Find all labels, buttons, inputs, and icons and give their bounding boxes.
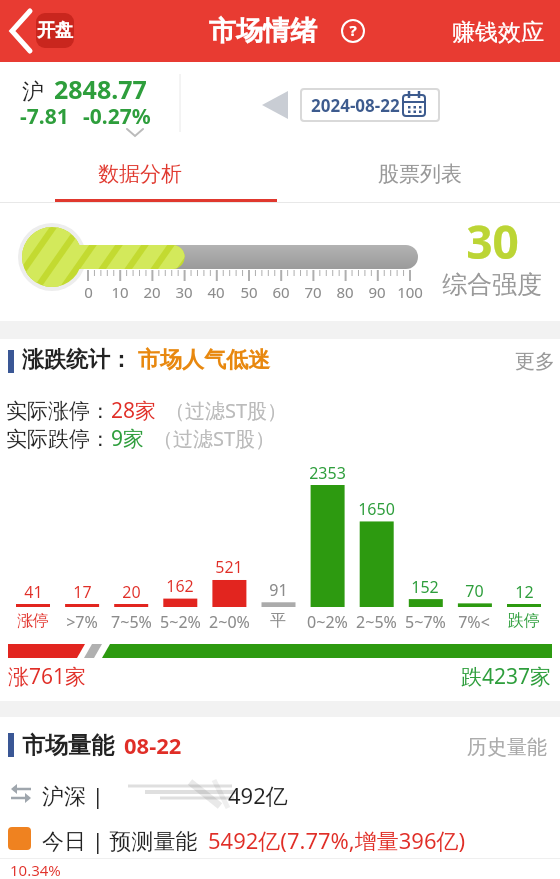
staticText: >7% bbox=[66, 611, 98, 633]
staticText: 市场情绪 bbox=[209, 14, 317, 48]
staticText: 70 bbox=[465, 580, 484, 602]
staticText: 跌4237家 bbox=[461, 662, 552, 691]
staticText: 2848.77 bbox=[54, 72, 147, 106]
staticText: 30 bbox=[466, 210, 519, 273]
staticText: 平 bbox=[270, 611, 286, 631]
button[interactable]: 数据分析 bbox=[0, 145, 280, 203]
staticText: 70 bbox=[304, 282, 322, 302]
staticText: 历史量能 bbox=[467, 735, 547, 760]
staticText: 涨跌统计： bbox=[22, 346, 132, 374]
button[interactable] bbox=[4, 6, 40, 56]
staticText: 40 bbox=[207, 282, 225, 302]
staticText: -0.27% bbox=[83, 102, 151, 131]
staticText: 28家 bbox=[111, 396, 157, 425]
staticText: 60 bbox=[272, 282, 290, 302]
staticText: 今日 | 预测量能 bbox=[42, 825, 198, 855]
staticText: 41 bbox=[24, 581, 43, 603]
staticText: 实际跌停： bbox=[6, 426, 111, 452]
staticText: 91 bbox=[269, 579, 288, 601]
staticText: 5492亿(7.77%,增量396亿) bbox=[208, 825, 466, 855]
button[interactable]: 2024-08-22 bbox=[300, 88, 440, 122]
staticText: 7~5% bbox=[111, 611, 152, 633]
staticText: 1650 bbox=[358, 498, 395, 520]
staticText: 沪深 | bbox=[42, 780, 104, 810]
staticText: 股票列表 bbox=[378, 161, 462, 187]
staticText: 2353 bbox=[309, 462, 346, 484]
staticText: 9家 bbox=[111, 424, 145, 453]
staticText: 开盘 bbox=[37, 19, 73, 42]
staticText: 10 bbox=[111, 282, 129, 302]
button[interactable]: 赚钱效应 bbox=[440, 14, 556, 50]
staticText: 涨停 bbox=[17, 611, 49, 631]
staticText: 0~2% bbox=[307, 611, 348, 633]
staticText: 沪 bbox=[22, 78, 44, 106]
staticText: 跌停 bbox=[508, 611, 540, 631]
button[interactable]: 更多 bbox=[495, 346, 555, 376]
staticText: 90 bbox=[368, 282, 386, 302]
staticText: 17 bbox=[73, 581, 92, 603]
staticText: 更多 bbox=[515, 349, 555, 374]
staticText: 20 bbox=[143, 282, 161, 302]
button[interactable]: 股票列表 bbox=[280, 145, 560, 203]
staticText: （过滤ST股） bbox=[153, 425, 276, 452]
staticText: 2024-08-22 bbox=[311, 94, 400, 117]
button[interactable] bbox=[255, 85, 295, 125]
staticText: 10.34% bbox=[10, 860, 61, 879]
staticText: 50 bbox=[240, 282, 258, 302]
staticText: 20 bbox=[122, 581, 141, 603]
staticText: 5~7% bbox=[405, 611, 446, 633]
staticText: 2~5% bbox=[356, 611, 397, 633]
staticText: 7%< bbox=[458, 611, 490, 633]
staticText: 12 bbox=[515, 581, 534, 603]
button[interactable]: 开盘 bbox=[36, 13, 74, 48]
staticText: （过滤ST股） bbox=[165, 397, 288, 424]
staticText: 521 bbox=[215, 556, 243, 578]
staticText: 30 bbox=[175, 282, 193, 302]
staticText: 数据分析 bbox=[98, 161, 182, 187]
button[interactable]: 历史量能 bbox=[455, 732, 547, 762]
staticText: 赚钱效应 bbox=[452, 18, 544, 47]
staticText: -7.81 bbox=[20, 102, 69, 131]
staticText: 162 bbox=[166, 575, 194, 597]
staticText: 2~0% bbox=[209, 611, 250, 633]
staticText: 08-22 bbox=[124, 730, 182, 760]
staticText: ? bbox=[349, 20, 357, 40]
staticText: 综合强度 bbox=[442, 269, 542, 300]
staticText: 市场人气低迷 bbox=[138, 346, 270, 374]
staticText: 市场量能 bbox=[22, 731, 114, 760]
staticText: 5~2% bbox=[160, 611, 201, 633]
staticText: 0 bbox=[84, 282, 93, 302]
staticText: 80 bbox=[336, 282, 354, 302]
staticText: 492亿 bbox=[228, 780, 288, 810]
staticText: 100 bbox=[397, 282, 423, 302]
staticText: 涨761家 bbox=[8, 662, 87, 691]
staticText: 152 bbox=[411, 576, 439, 598]
staticText: 实际涨停： bbox=[6, 398, 111, 424]
